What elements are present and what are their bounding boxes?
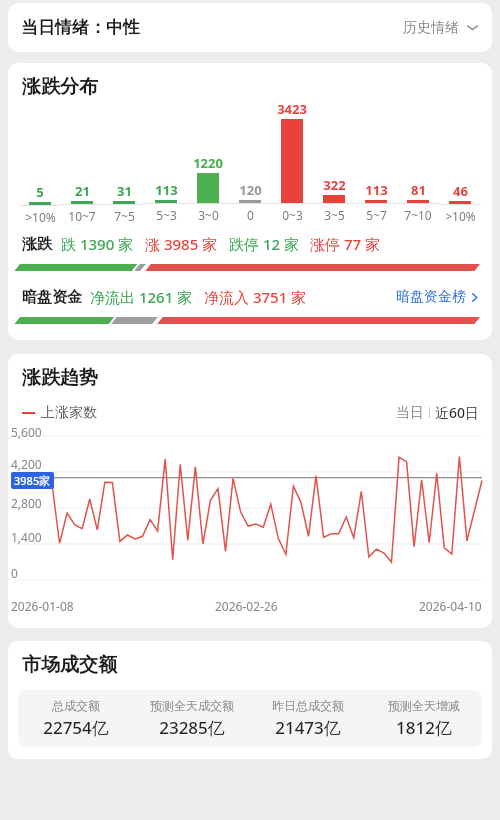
staticText: 113 — [155, 181, 178, 199]
staticText: 120 — [239, 181, 262, 199]
staticText: 跌停 12 家 — [229, 234, 299, 254]
staticText: 0~3 — [282, 207, 303, 223]
staticText: 21473亿 — [275, 716, 341, 739]
staticText: 当日情绪：中性 — [21, 17, 140, 38]
staticText: 81 — [411, 181, 426, 199]
staticText: 0 — [11, 565, 18, 581]
button[interactable]: 当日情绪：中性 — [8, 3, 492, 52]
staticText: 31 — [117, 182, 132, 200]
staticText: 113 — [365, 181, 388, 199]
staticText: 2026-01-08 — [11, 598, 74, 614]
other: Expand history — [466, 21, 479, 34]
staticText: 涨停 77 家 — [310, 234, 380, 254]
staticText: 4,200 — [11, 456, 42, 472]
staticText: 上涨家数 — [41, 404, 97, 422]
button[interactable]: 暗盘资金榜 — [396, 288, 480, 306]
staticText: 暗盘资金榜 — [396, 288, 466, 306]
staticText: 10~7 — [68, 208, 96, 223]
staticText: 2026-04-10 — [419, 598, 482, 614]
staticText: 22754亿 — [43, 716, 109, 739]
staticText: 跌 1390 家 — [61, 234, 134, 254]
staticText: 21 — [75, 182, 90, 200]
staticText: 322 — [323, 176, 346, 194]
staticText: 净流出 1261 家 — [90, 287, 193, 307]
staticText: 5~3 — [156, 207, 177, 223]
staticText: 3985家 — [14, 473, 51, 488]
staticText: 1220 — [193, 154, 223, 172]
staticText: 预测全天增减 — [388, 698, 460, 713]
staticText: 涨 3985 家 — [145, 234, 218, 254]
staticText: 3423 — [277, 100, 307, 118]
staticText: 净流入 3751 家 — [204, 287, 307, 307]
staticText: 3~0 — [198, 207, 219, 223]
staticText: 23285亿 — [159, 716, 225, 739]
staticText: 历史情绪 — [403, 19, 459, 37]
staticText: 7~5 — [114, 208, 135, 223]
staticText: >10% — [25, 209, 56, 223]
staticText: 涨跌分布 — [22, 75, 98, 99]
staticText: 涨跌 — [22, 235, 52, 254]
staticText: 5~7 — [366, 207, 387, 223]
staticText: 7~10 — [404, 207, 432, 223]
staticText: 暗盘资金 — [22, 288, 82, 307]
staticText: 市场成交额 — [22, 653, 117, 677]
staticText: 2,800 — [11, 495, 42, 511]
button[interactable]: 近60日 — [435, 403, 480, 422]
staticText: 2026-02-26 — [215, 598, 278, 614]
staticText: 昨日总成交额 — [272, 698, 344, 713]
staticText: >10% — [445, 208, 476, 223]
staticText: 1,400 — [11, 529, 42, 545]
button[interactable]: 当日 — [396, 404, 424, 422]
staticText: 预测全天成交额 — [150, 698, 234, 713]
staticText: 0 — [247, 207, 254, 223]
staticText: 涨跌趋势 — [22, 366, 98, 390]
staticText: 总成交额 — [52, 698, 100, 713]
staticText: 1812亿 — [396, 716, 452, 739]
staticText: 46 — [453, 182, 468, 200]
staticText: 5,600 — [11, 424, 42, 440]
staticText: 5 — [36, 183, 44, 201]
staticText: 3~5 — [324, 207, 345, 223]
